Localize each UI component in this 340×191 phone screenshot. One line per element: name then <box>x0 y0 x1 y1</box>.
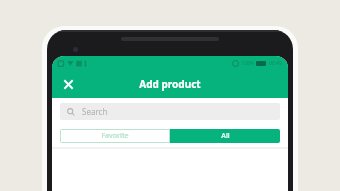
staticText: 00:49 <box>269 60 282 67</box>
button[interactable]: All <box>170 129 280 143</box>
staticText: 100% <box>241 60 254 67</box>
button[interactable]: Close <box>57 73 79 95</box>
button[interactable]: Search <box>60 103 280 120</box>
staticText: Search <box>82 106 108 117</box>
staticText: Favorite <box>101 131 129 141</box>
staticText: All <box>221 131 230 141</box>
staticText: Add product <box>139 77 201 91</box>
button[interactable]: Favorite <box>60 129 170 143</box>
